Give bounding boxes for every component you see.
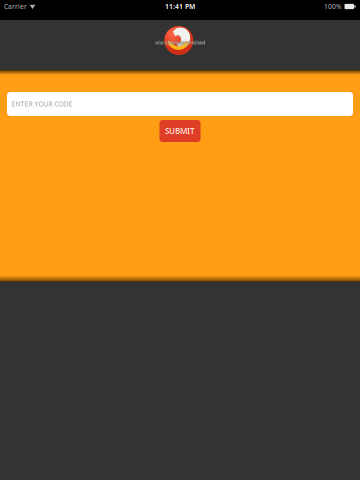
staticText: 11:41 PM xyxy=(165,2,195,11)
staticText: 100% xyxy=(324,2,342,11)
staticText: vie-share.unlimited xyxy=(155,39,205,46)
staticText: SUBMIT xyxy=(165,126,195,136)
button[interactable]: SUBMIT xyxy=(159,120,200,142)
button[interactable]: ENTER YOUR CODE xyxy=(7,92,353,116)
staticText: Carrier xyxy=(4,2,27,11)
staticText: ENTER YOUR CODE xyxy=(11,100,72,108)
